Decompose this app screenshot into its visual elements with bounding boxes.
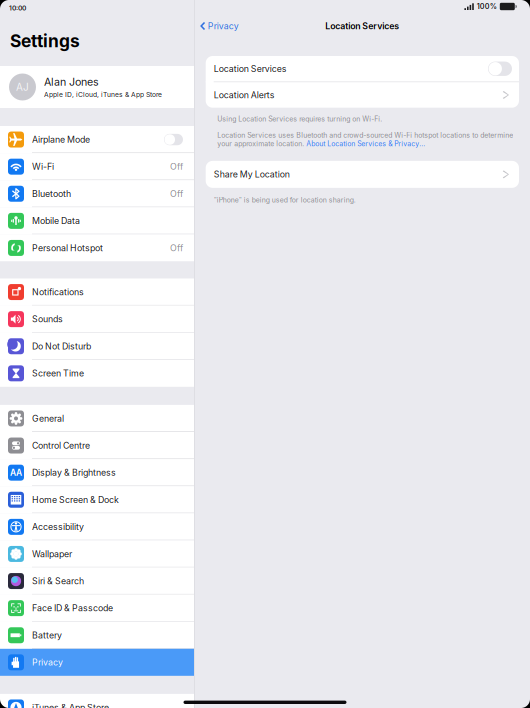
- button[interactable]: Airplane Mode: [0, 126, 194, 153]
- button[interactable]: AJ: [0, 66, 194, 108]
- staticText: Notifications: [32, 287, 84, 297]
- staticText: Settings: [10, 30, 80, 51]
- staticText: Location Alerts: [214, 90, 275, 100]
- button[interactable]: Siri & Search: [0, 567, 194, 595]
- button[interactable]: AA: [0, 459, 194, 486]
- staticText: "iPhone" is being used for location shar…: [214, 196, 356, 204]
- button[interactable]: Battery: [0, 622, 194, 649]
- button[interactable]: Privacy: [195, 17, 239, 35]
- staticText: AJ: [16, 81, 29, 93]
- staticText: Share My Location: [214, 169, 290, 180]
- staticText: Alan Jones: [44, 75, 99, 88]
- staticText: iTunes & App Store: [32, 702, 109, 708]
- button[interactable]: Home Screen & Dock: [0, 486, 194, 513]
- button[interactable]: Location Alerts: [206, 82, 519, 108]
- staticText: Do Not Disturb: [32, 341, 91, 351]
- staticText: Battery: [32, 630, 62, 640]
- staticText: Location Services: [325, 21, 399, 31]
- staticText: Home Screen & Dock: [32, 494, 119, 505]
- staticText: Location Services: [214, 63, 287, 74]
- staticText: Using Location Services requires turning…: [217, 115, 382, 123]
- staticText: 10:00: [9, 4, 26, 12]
- staticText: Off: [170, 188, 183, 199]
- button[interactable]: Control Centre: [0, 432, 194, 459]
- button[interactable]: Sounds: [0, 306, 194, 333]
- button[interactable]: Screen Time: [0, 360, 194, 387]
- staticText: Siri & Search: [32, 576, 84, 586]
- staticText: Sounds: [32, 314, 63, 324]
- staticText: 100%: [477, 2, 497, 11]
- staticText: Airplane Mode: [32, 134, 90, 145]
- button[interactable]: iTunes & App Store: [0, 694, 194, 708]
- staticText: Control Centre: [32, 440, 90, 451]
- button[interactable]: Notifications: [0, 278, 194, 306]
- staticText: General: [32, 413, 64, 424]
- button[interactable]: Face ID & Passcode: [0, 595, 194, 622]
- staticText: Wi-Fi: [32, 161, 54, 172]
- staticText: Mobile Data: [32, 215, 80, 226]
- staticText: Off: [170, 161, 183, 172]
- staticText: Off: [170, 243, 183, 253]
- staticText: Privacy: [32, 657, 63, 668]
- button[interactable]: Wallpaper: [0, 540, 194, 567]
- button[interactable]: Share My Location: [206, 161, 519, 188]
- button[interactable]: Privacy: [0, 649, 194, 676]
- staticText: Face ID & Passcode: [32, 603, 113, 613]
- button[interactable]: Bluetooth: [0, 180, 194, 207]
- staticText: Location Services uses Bluetooth and cro…: [217, 131, 513, 148]
- button[interactable]: Mobile Data: [0, 207, 194, 234]
- button[interactable]: Do Not Disturb: [0, 333, 194, 360]
- staticText: Apple ID, iCloud, iTunes & App Store: [44, 90, 162, 98]
- button[interactable]: Accessibility: [0, 513, 194, 540]
- staticText: Privacy: [208, 21, 239, 31]
- button[interactable]: Personal Hotspot: [0, 234, 194, 261]
- button[interactable]: General: [0, 405, 194, 432]
- staticText: Accessibility: [32, 521, 84, 532]
- staticText: Personal Hotspot: [32, 243, 103, 253]
- button[interactable]: Location Services: [206, 56, 519, 81]
- staticText: Wallpaper: [32, 549, 72, 559]
- staticText: Display & Brightness: [32, 467, 116, 478]
- staticText: Bluetooth: [32, 188, 71, 199]
- staticText: Screen Time: [32, 368, 84, 379]
- button[interactable]: Wi-Fi: [0, 153, 194, 180]
- staticText: AA: [10, 468, 22, 478]
